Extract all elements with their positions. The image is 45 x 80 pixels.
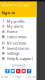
staticText: Help & support bbox=[7, 56, 33, 61]
button[interactable]: My profile bbox=[0, 18, 36, 24]
staticText: My profile bbox=[7, 18, 25, 24]
staticText: My alerts bbox=[7, 24, 24, 29]
button[interactable]: Help & support bbox=[0, 56, 36, 61]
button[interactable]: Facebook bbox=[5, 69, 10, 73]
button[interactable]: Saved stories bbox=[0, 45, 36, 51]
button[interactable]: Settings bbox=[0, 51, 36, 56]
button[interactable]: All sections bbox=[0, 40, 36, 45]
staticText: Welcome to the app bbox=[2, 3, 30, 7]
button[interactable]: Latest news bbox=[0, 34, 36, 39]
button[interactable]: Instagram bbox=[21, 69, 26, 73]
staticText: Saved stories bbox=[7, 45, 30, 51]
button[interactable]: YouTube bbox=[16, 69, 20, 73]
staticText: Settings bbox=[7, 51, 20, 56]
staticText: Follow us bbox=[12, 64, 25, 67]
staticText: Home bbox=[7, 29, 18, 34]
button[interactable]: Home bbox=[0, 29, 36, 34]
button[interactable]: LinkedIn bbox=[27, 69, 31, 73]
button[interactable]: My alerts bbox=[0, 24, 36, 29]
staticText: Latest news bbox=[7, 34, 27, 39]
staticText: Terms · Privacy · Contact bbox=[1, 75, 36, 79]
staticText: Sign in bbox=[2, 10, 16, 15]
button[interactable]: Twitter bbox=[11, 69, 15, 73]
staticText: All sections bbox=[7, 40, 27, 45]
